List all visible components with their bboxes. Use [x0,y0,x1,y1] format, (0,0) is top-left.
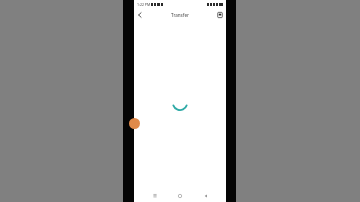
staticText: 1:22 PM [137,2,151,7]
button[interactable]: Back [134,9,146,21]
button[interactable]: Back [201,191,211,201]
button[interactable]: Home [175,191,185,201]
button[interactable]: Scan [214,9,226,21]
button[interactable]: Recent apps [150,191,160,201]
staticText: Transfer [171,12,189,18]
button[interactable]: Floating action [129,118,140,129]
